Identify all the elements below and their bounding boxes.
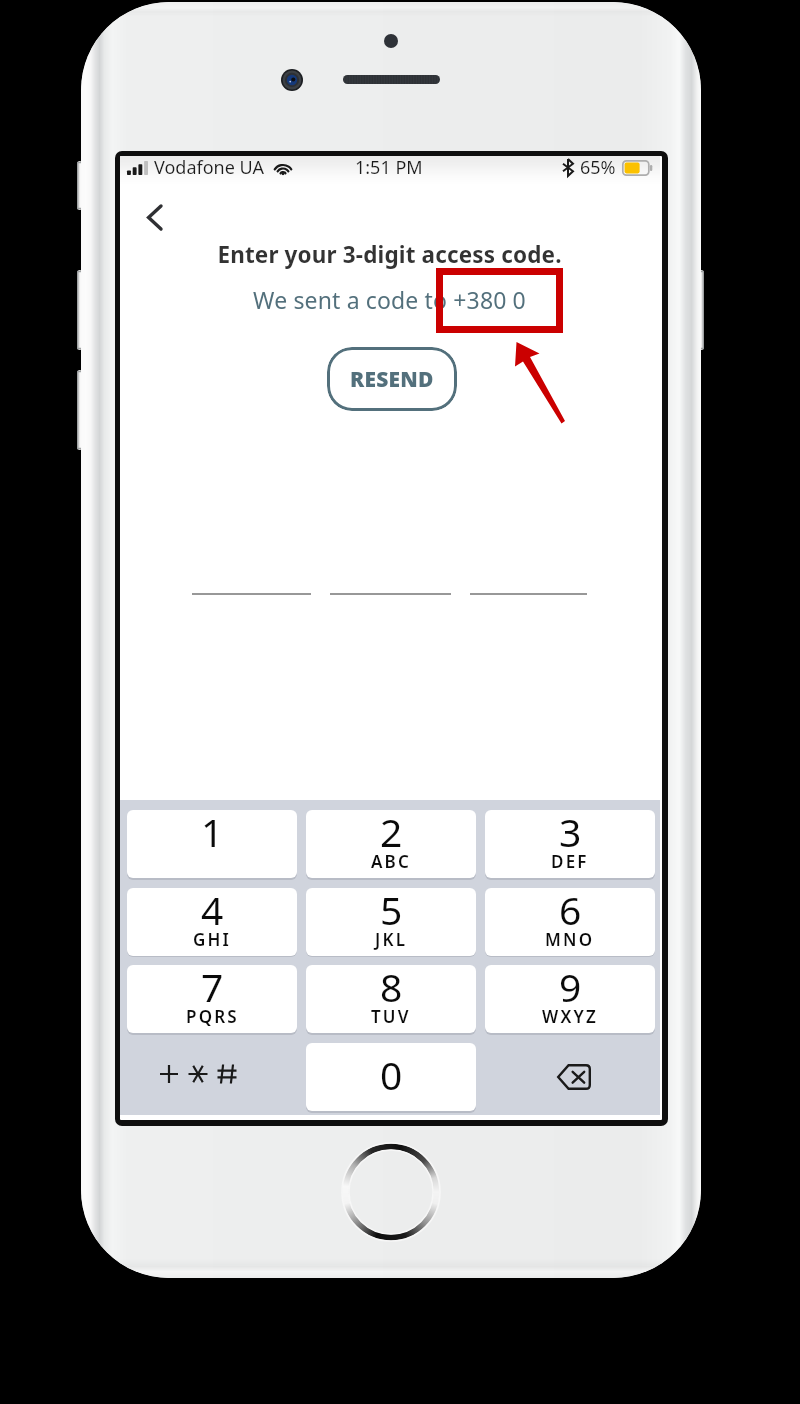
staticText: 1:51 PM xyxy=(355,156,423,180)
staticText: 65% xyxy=(580,156,616,180)
staticText: 0 xyxy=(380,1048,403,1101)
staticText: 1 xyxy=(201,810,224,858)
staticText: ABC xyxy=(371,850,412,873)
button[interactable]: 5 xyxy=(306,888,476,956)
staticText: MNO xyxy=(545,928,595,951)
button[interactable]: 7 xyxy=(127,965,297,1033)
staticText: 3 xyxy=(559,810,582,858)
button[interactable]: 6 xyxy=(485,888,655,956)
staticText: 6 xyxy=(559,888,582,936)
staticText: RESEND xyxy=(350,365,434,394)
button[interactable]: Symbols xyxy=(127,1043,297,1111)
staticText: Vodafone UA xyxy=(154,156,265,180)
staticText: PQRS xyxy=(186,1005,239,1028)
staticText: JKL xyxy=(375,928,408,951)
button[interactable]: Backspace xyxy=(485,1043,655,1111)
button[interactable]: RESEND xyxy=(327,347,457,411)
staticText: We sent a code to +380 0 xyxy=(253,284,526,315)
staticText: 5 xyxy=(380,888,403,936)
button[interactable]: 8 xyxy=(306,965,476,1033)
staticText: 9 xyxy=(559,965,582,1013)
button[interactable]: 0 xyxy=(306,1043,476,1111)
staticText: TUV xyxy=(371,1005,411,1028)
staticText: DEF xyxy=(551,850,589,873)
button[interactable]: 4 xyxy=(127,888,297,956)
staticText: 2 xyxy=(380,810,403,858)
staticText: 7 xyxy=(201,965,224,1013)
staticText: Enter your 3-digit access code. xyxy=(217,239,562,270)
button[interactable]: 3 xyxy=(485,810,655,878)
staticText: 8 xyxy=(380,965,403,1013)
staticText: GHI xyxy=(193,928,232,951)
button[interactable]: 2 xyxy=(306,810,476,878)
staticText: 4 xyxy=(201,888,224,936)
button[interactable]: Back xyxy=(130,193,178,241)
button[interactable]: 9 xyxy=(485,965,655,1033)
button[interactable]: 1 xyxy=(127,810,297,878)
staticText: WXYZ xyxy=(542,1005,598,1028)
